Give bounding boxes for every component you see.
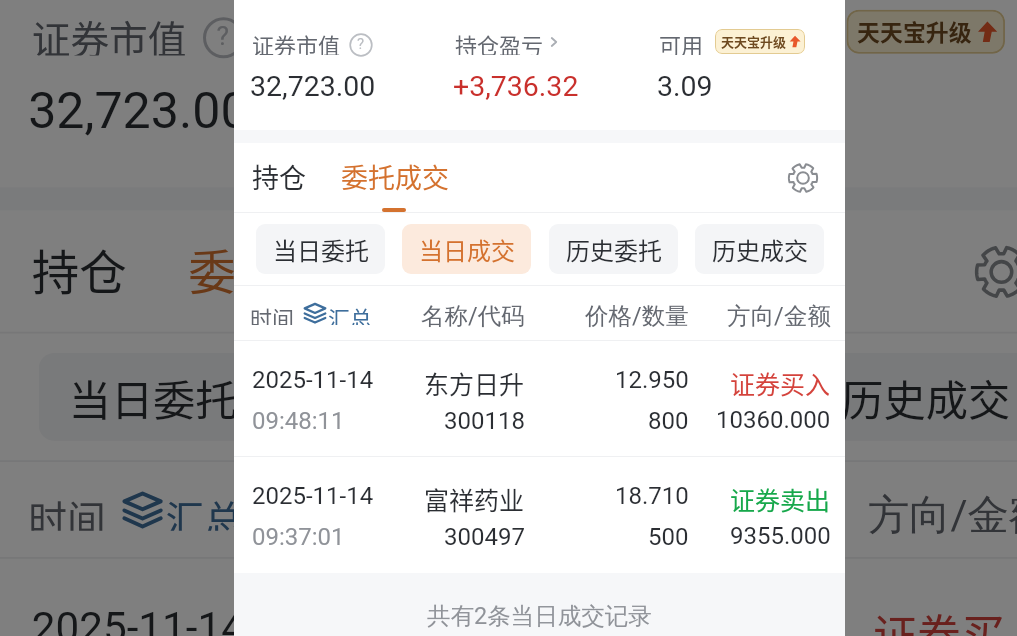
button[interactable]: 时间	[250, 301, 373, 325]
staticText: 300497	[444, 523, 525, 551]
staticText: 证券市值	[252, 28, 341, 55]
button[interactable]: 2025-11-14	[0, 559, 1017, 636]
button[interactable]: 历史成交	[695, 224, 824, 274]
staticText: 天天宝升级	[857, 15, 973, 48]
staticText: 800	[648, 407, 689, 435]
staticText: 32,723.00	[28, 82, 250, 140]
staticText: 持仓	[252, 157, 306, 196]
staticText: 东方日升	[424, 365, 525, 401]
staticText: +3,736.32	[453, 70, 579, 103]
staticText: 当日委托	[273, 232, 369, 267]
staticText: 委托成交	[341, 157, 449, 196]
button[interactable]: 持仓	[25, 230, 134, 309]
staticText: +3,736.32	[385, 82, 607, 140]
button[interactable]: 历史成交	[811, 353, 1017, 441]
button[interactable]: 设置	[784, 159, 821, 196]
button[interactable]: 说明	[349, 33, 373, 57]
staticText: 32,723.00	[250, 70, 376, 103]
staticText: 可用	[748, 8, 827, 55]
staticText: 当日委托	[69, 367, 238, 429]
staticText: ?	[216, 20, 231, 52]
staticText: 3.09	[657, 70, 713, 103]
staticText: 东方日升	[334, 601, 512, 636]
staticText: 持仓盈亏	[455, 28, 544, 55]
staticText: 2025-11-14	[32, 603, 246, 636]
staticText: 共有2条当日成交记录	[427, 601, 652, 631]
staticText: 方向/金额	[727, 301, 831, 331]
staticText: 富祥药业	[424, 481, 525, 517]
staticText: 历史委托	[584, 367, 753, 429]
staticText: 历史成交	[712, 232, 808, 267]
staticText: 持仓盈亏	[389, 8, 546, 55]
button[interactable]: 当日成交	[296, 353, 523, 441]
staticText: 证券买入	[730, 365, 831, 401]
staticText: 名称/代码	[329, 488, 512, 541]
button[interactable]: 当日委托	[39, 353, 266, 441]
staticText: 历史成交	[841, 367, 1010, 429]
staticText: 时间	[250, 301, 295, 325]
staticText: 名称/代码	[421, 301, 525, 331]
staticText: 当日成交	[419, 232, 515, 267]
staticText: 价格/数量	[585, 301, 689, 331]
staticText: 价格/数量	[618, 488, 801, 541]
staticText: 9355.000	[730, 522, 831, 550]
button[interactable]: 2025-11-14	[234, 341, 845, 456]
button[interactable]: 持仓	[248, 154, 310, 199]
button[interactable]: 委托成交	[181, 230, 385, 309]
button[interactable]: 天天宝升级	[847, 10, 1005, 54]
staticText: 09:48:11	[252, 407, 345, 435]
button[interactable]: 时间	[28, 488, 245, 531]
button[interactable]: 天天宝升级	[715, 29, 805, 54]
button[interactable]: 当日委托	[256, 224, 385, 274]
staticText: 2025-11-14	[252, 366, 374, 394]
staticText: 天天宝升级	[721, 32, 787, 51]
staticText: 历史委托	[566, 232, 662, 267]
staticText: 当日成交	[326, 367, 495, 429]
staticText: 18.710	[615, 482, 689, 510]
staticText: 证券卖出	[730, 481, 831, 517]
staticText: 2025-11-14	[252, 482, 374, 510]
staticText: 方向/金额	[868, 488, 1017, 541]
button[interactable]: 当日成交	[402, 224, 531, 274]
staticText: 500	[648, 523, 689, 551]
staticText: 汇总	[328, 301, 373, 325]
button[interactable]: 2025-11-14	[234, 457, 845, 572]
staticText: 证券买入	[873, 601, 1017, 636]
staticText: ?	[357, 35, 365, 53]
staticText: 09:37:01	[252, 523, 345, 551]
staticText: 时间	[28, 488, 107, 531]
button[interactable]: 设置	[968, 238, 1017, 304]
staticText: 委托成交	[188, 235, 378, 304]
staticText: 3.09	[744, 82, 843, 140]
button[interactable]: 说明	[202, 17, 245, 59]
staticText: 可用	[659, 28, 704, 55]
button[interactable]: 委托成交	[337, 154, 453, 199]
staticText: 汇总	[165, 488, 245, 531]
staticText: 300118	[444, 407, 525, 435]
staticText: 12.950	[615, 366, 689, 394]
staticText: 证券市值	[32, 8, 188, 55]
button[interactable]: 历史委托	[554, 353, 781, 441]
button[interactable]: 历史委托	[549, 224, 678, 274]
staticText: 10360.000	[716, 406, 831, 434]
staticText: 持仓	[32, 235, 127, 304]
